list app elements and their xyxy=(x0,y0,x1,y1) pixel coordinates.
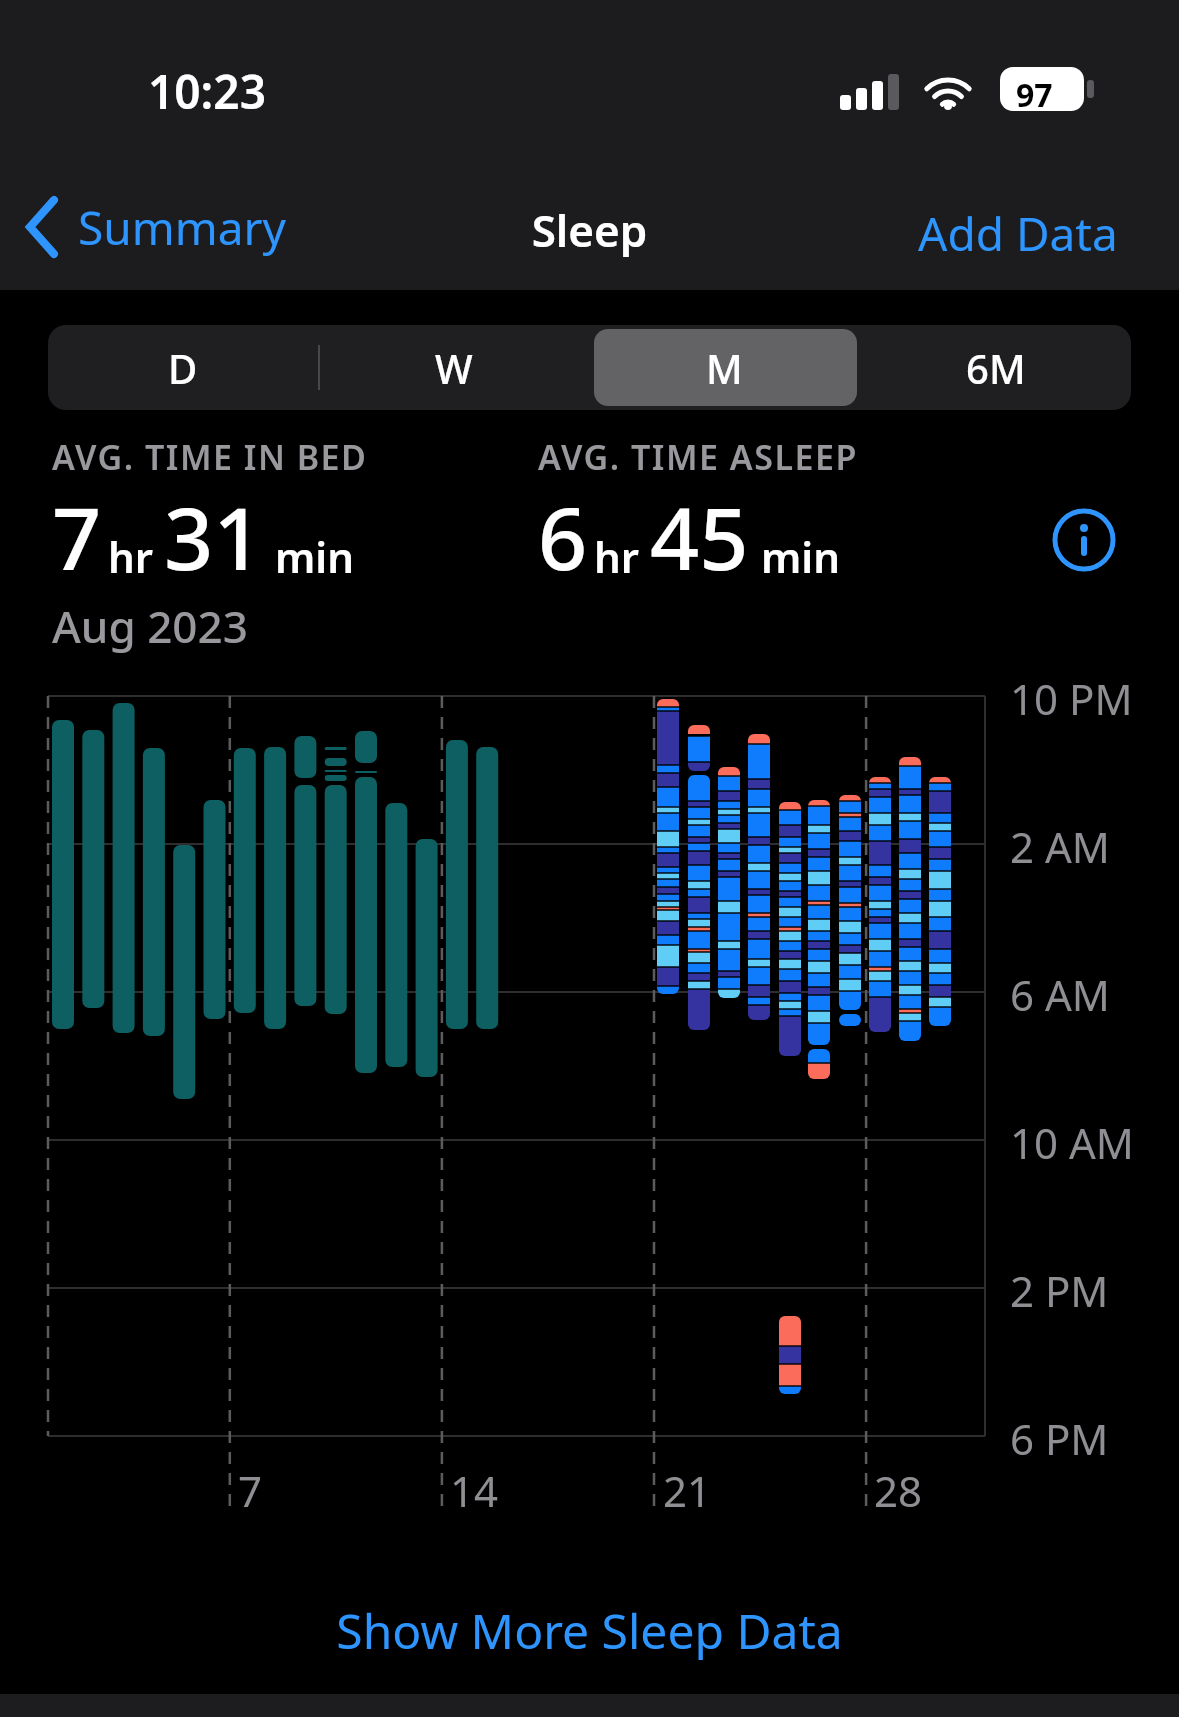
staticText: Summary xyxy=(78,196,286,259)
staticText: 2 AM xyxy=(1010,818,1110,875)
staticText: 21 xyxy=(663,1462,712,1519)
staticText: 2 PM xyxy=(1010,1262,1109,1319)
staticText: 7 xyxy=(52,478,102,595)
staticText: 10 AM xyxy=(1010,1114,1134,1171)
staticText: AVG. TIME ASLEEP xyxy=(538,434,858,480)
button[interactable]: Sleep xyxy=(0,200,1179,260)
staticText: Aug 2023 xyxy=(52,596,248,656)
staticText: 14 xyxy=(450,1462,499,1519)
staticText: 6 PM xyxy=(1010,1410,1109,1467)
button[interactable]: D xyxy=(48,325,318,410)
staticText: 10:23 xyxy=(148,60,266,123)
staticText: 6 AM xyxy=(1010,966,1110,1023)
staticText: 31 xyxy=(164,478,263,595)
staticText: hr xyxy=(108,528,154,585)
button[interactable]: Show More Sleep Data xyxy=(0,1598,1179,1663)
button[interactable]: 6M xyxy=(860,325,1131,410)
button[interactable]: Add Data xyxy=(918,202,1118,265)
button[interactable]: W xyxy=(318,325,589,410)
button[interactable]: Summary xyxy=(20,195,286,259)
staticText: 97 xyxy=(1016,73,1053,117)
staticText: W xyxy=(435,341,473,395)
button[interactable]: M xyxy=(589,325,860,410)
button[interactable] xyxy=(1050,506,1118,574)
staticText: AVG. TIME IN BED xyxy=(52,434,368,480)
staticText: 6M xyxy=(966,341,1026,395)
staticText: 6 xyxy=(538,478,588,595)
staticText: 45 xyxy=(650,478,749,595)
staticText: hr xyxy=(594,528,640,585)
staticText: M xyxy=(706,341,743,395)
staticText: D xyxy=(168,341,198,395)
staticText: 28 xyxy=(874,1462,923,1519)
staticText: 7 xyxy=(238,1462,263,1519)
staticText: min xyxy=(275,528,355,585)
staticText: 10 PM xyxy=(1010,670,1133,727)
staticText: min xyxy=(761,528,841,585)
